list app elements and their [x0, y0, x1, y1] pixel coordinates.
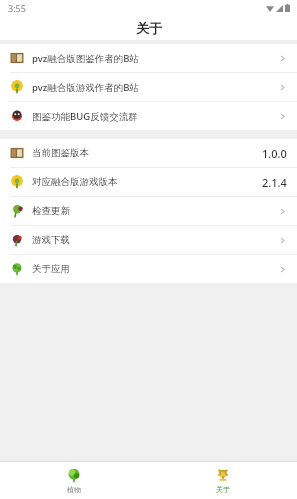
staticText: pvz融合版图鉴作者的B站 — [32, 52, 139, 65]
staticText: 3:55 — [8, 2, 26, 14]
staticText: 1.0.0 — [262, 146, 287, 161]
staticText: 检查更新 — [32, 205, 70, 217]
button[interactable]: 关于 — [148, 462, 297, 499]
staticText: 2.1.4 — [262, 175, 287, 190]
staticText: 图鉴功能BUG反馈交流群 — [32, 110, 138, 123]
button[interactable]: 游戏下载 — [0, 226, 297, 254]
button[interactable]: 图鉴功能BUG反馈交流群 — [0, 102, 297, 130]
button[interactable]: 当前图鉴版本 — [0, 139, 297, 167]
staticText: pvz融合版游戏作者的B站 — [32, 81, 139, 94]
staticText: 关于 — [216, 485, 230, 494]
button[interactable]: 对应融合版游戏版本 — [0, 168, 297, 196]
staticText: 植物 — [67, 485, 81, 494]
button[interactable]: pvz融合版游戏作者的B站 — [0, 73, 297, 101]
staticText: 当前图鉴版本 — [32, 147, 89, 159]
staticText: 对应融合版游戏版本 — [32, 176, 118, 188]
staticText: 游戏下载 — [32, 234, 70, 246]
button[interactable]: 检查更新 — [0, 197, 297, 225]
staticText: 关于 — [136, 20, 162, 36]
button[interactable]: 植物 — [0, 462, 148, 499]
staticText: 关于应用 — [32, 263, 70, 275]
button[interactable]: 关于应用 — [0, 255, 297, 283]
button[interactable]: pvz融合版图鉴作者的B站 — [0, 44, 297, 72]
